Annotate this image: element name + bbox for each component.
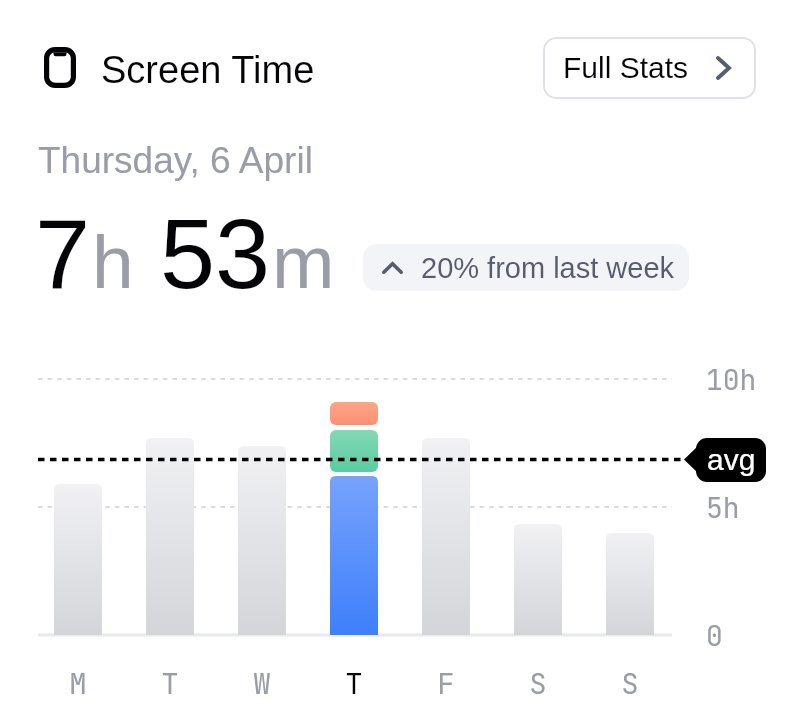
staticText: W — [253, 664, 271, 702]
staticText: 5h — [706, 489, 740, 526]
staticText: T — [161, 664, 179, 702]
staticText: S — [621, 664, 639, 702]
staticText: 20% from last week — [421, 252, 675, 284]
staticText: Screen Time — [101, 49, 315, 91]
staticText: F — [437, 664, 455, 702]
staticText: M — [69, 664, 87, 702]
button[interactable]: avg — [696, 438, 766, 482]
staticText: avg — [707, 443, 756, 477]
staticText: S — [529, 664, 547, 702]
staticText: Full Stats — [563, 51, 689, 85]
staticText: 0 — [706, 617, 723, 654]
staticText: 7 — [35, 198, 91, 309]
staticText: T — [345, 664, 363, 702]
staticText: m — [272, 220, 335, 304]
button[interactable]: Full Stats — [543, 37, 756, 99]
staticText: 53 — [160, 198, 271, 309]
button[interactable]: 20% from last week — [363, 244, 689, 291]
staticText: Thursday, 6 April — [38, 140, 313, 181]
other: Device — [44, 47, 76, 88]
staticText: h — [92, 220, 134, 304]
staticText: 10h — [706, 361, 757, 398]
